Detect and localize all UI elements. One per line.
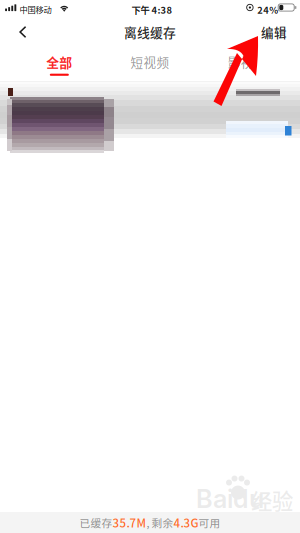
- staticText: 离线缓存: [124, 23, 176, 41]
- button[interactable]: 影视: [195, 47, 286, 81]
- staticText: 影视: [228, 53, 254, 71]
- staticText: , 剩余: [146, 515, 173, 530]
- button[interactable]: 编辑: [253, 17, 295, 47]
- staticText: 已缓存: [79, 515, 112, 530]
- staticText: 编辑: [261, 23, 287, 41]
- button[interactable]: 返回: [6, 17, 40, 47]
- button[interactable]: 全部: [14, 47, 105, 81]
- button[interactable]: 短视频: [105, 47, 195, 81]
- staticText: 下午 4:38: [131, 3, 172, 16]
- staticText: Baidu: [196, 484, 264, 514]
- staticText: 短视频: [130, 53, 169, 71]
- staticText: 4.3G: [173, 514, 198, 531]
- staticText: 中国移动: [20, 3, 52, 15]
- staticText: 可用: [198, 515, 220, 530]
- staticText: 24%: [257, 3, 278, 16]
- staticText: 全部: [46, 53, 72, 71]
- staticText: 35.7M: [112, 514, 146, 531]
- staticText: 经验: [251, 485, 293, 515]
